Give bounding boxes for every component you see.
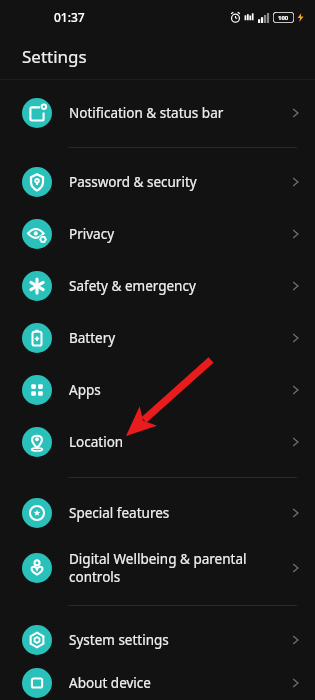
- button[interactable]: Password & security: [0, 156, 315, 208]
- button[interactable]: About device: [0, 666, 315, 700]
- staticText: 100: [278, 14, 289, 22]
- button[interactable]: Special features: [0, 487, 315, 539]
- staticText: Privacy: [69, 225, 115, 243]
- staticText: Battery: [69, 329, 116, 347]
- staticText: About device: [69, 674, 151, 692]
- button[interactable]: Battery: [0, 312, 315, 364]
- staticText: Special features: [69, 504, 170, 522]
- staticText: Safety & emergency: [69, 277, 196, 295]
- staticText: Settings: [22, 45, 87, 68]
- button[interactable]: Safety & emergency: [0, 260, 315, 312]
- staticText: Location: [69, 433, 124, 451]
- button[interactable]: Location: [0, 416, 315, 468]
- staticText: Apps: [69, 381, 101, 399]
- button[interactable]: Privacy: [0, 208, 315, 260]
- staticText: Notification & status bar: [69, 104, 224, 122]
- button[interactable]: Notification & status bar: [0, 87, 315, 139]
- staticText: System settings: [69, 631, 169, 649]
- staticText: Digital Wellbeing & parental: [69, 550, 247, 568]
- staticText: 01:37: [54, 9, 85, 25]
- button[interactable]: Digital Wellbeing & parental: [0, 539, 315, 597]
- staticText: Password & security: [69, 173, 197, 191]
- button[interactable]: System settings: [0, 614, 315, 666]
- staticText: controls: [69, 568, 121, 586]
- button[interactable]: Apps: [0, 364, 315, 416]
